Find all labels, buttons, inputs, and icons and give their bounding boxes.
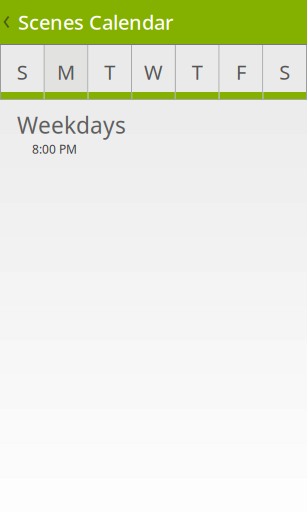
staticText: M: [57, 59, 75, 85]
staticText: W: [144, 59, 163, 85]
staticText: S: [279, 59, 290, 85]
button[interactable]: Back: [0, 0, 18, 44]
button[interactable]: M: [45, 45, 87, 99]
staticText: S: [17, 59, 28, 85]
staticText: Scenes Calendar: [18, 9, 173, 35]
button[interactable]: T: [176, 45, 219, 99]
staticText: F: [236, 59, 246, 85]
staticText: 8:00 PM: [32, 141, 77, 157]
button[interactable]: S: [263, 45, 306, 99]
button[interactable]: Weekdays: [0, 100, 307, 165]
staticText: T: [104, 59, 115, 85]
button[interactable]: W: [132, 45, 175, 99]
staticText: T: [192, 59, 203, 85]
button[interactable]: S: [1, 45, 44, 99]
button[interactable]: F: [220, 45, 262, 99]
staticText: Weekdays: [17, 110, 126, 140]
button[interactable]: T: [88, 45, 131, 99]
